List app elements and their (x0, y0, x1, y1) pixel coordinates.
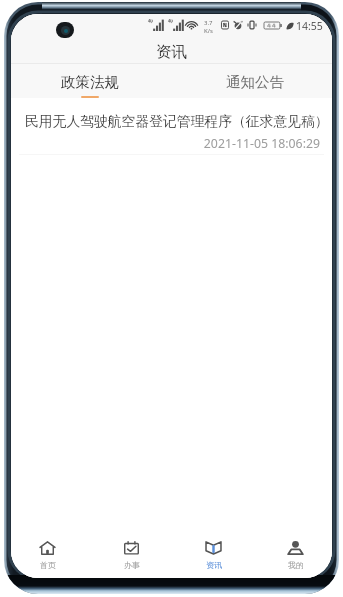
staticText: 通知公告 (226, 73, 284, 91)
other: Profile (287, 541, 304, 555)
staticText: K/s (204, 27, 213, 35)
other: News (205, 541, 222, 555)
staticText: 办事 (124, 560, 140, 570)
button[interactable]: 民用无人驾驶航空器登记管理程序（征求意见稿） (11, 98, 332, 154)
staticText: 资讯 (206, 560, 222, 570)
button[interactable]: Services (92, 533, 172, 578)
other: Home (39, 541, 56, 555)
staticText: 首页 (40, 560, 56, 570)
button[interactable]: News (172, 533, 252, 578)
staticText: 政策法规 (61, 73, 119, 91)
staticText: 我的 (288, 560, 304, 570)
staticText: 3.7 (204, 19, 213, 27)
staticText: 资讯 (156, 42, 187, 62)
button[interactable]: 政策法规 (11, 64, 171, 98)
staticText: 14:55 (296, 19, 323, 33)
staticText: 民用无人驾驶航空器登记管理程序（征求意见稿） (25, 113, 320, 130)
button[interactable]: 通知公告 (171, 64, 332, 98)
other: Services (123, 541, 140, 555)
button[interactable]: Home (11, 533, 92, 578)
staticText: 2021-11-05 18:06:29 (25, 135, 320, 152)
button[interactable]: Profile (252, 533, 332, 578)
